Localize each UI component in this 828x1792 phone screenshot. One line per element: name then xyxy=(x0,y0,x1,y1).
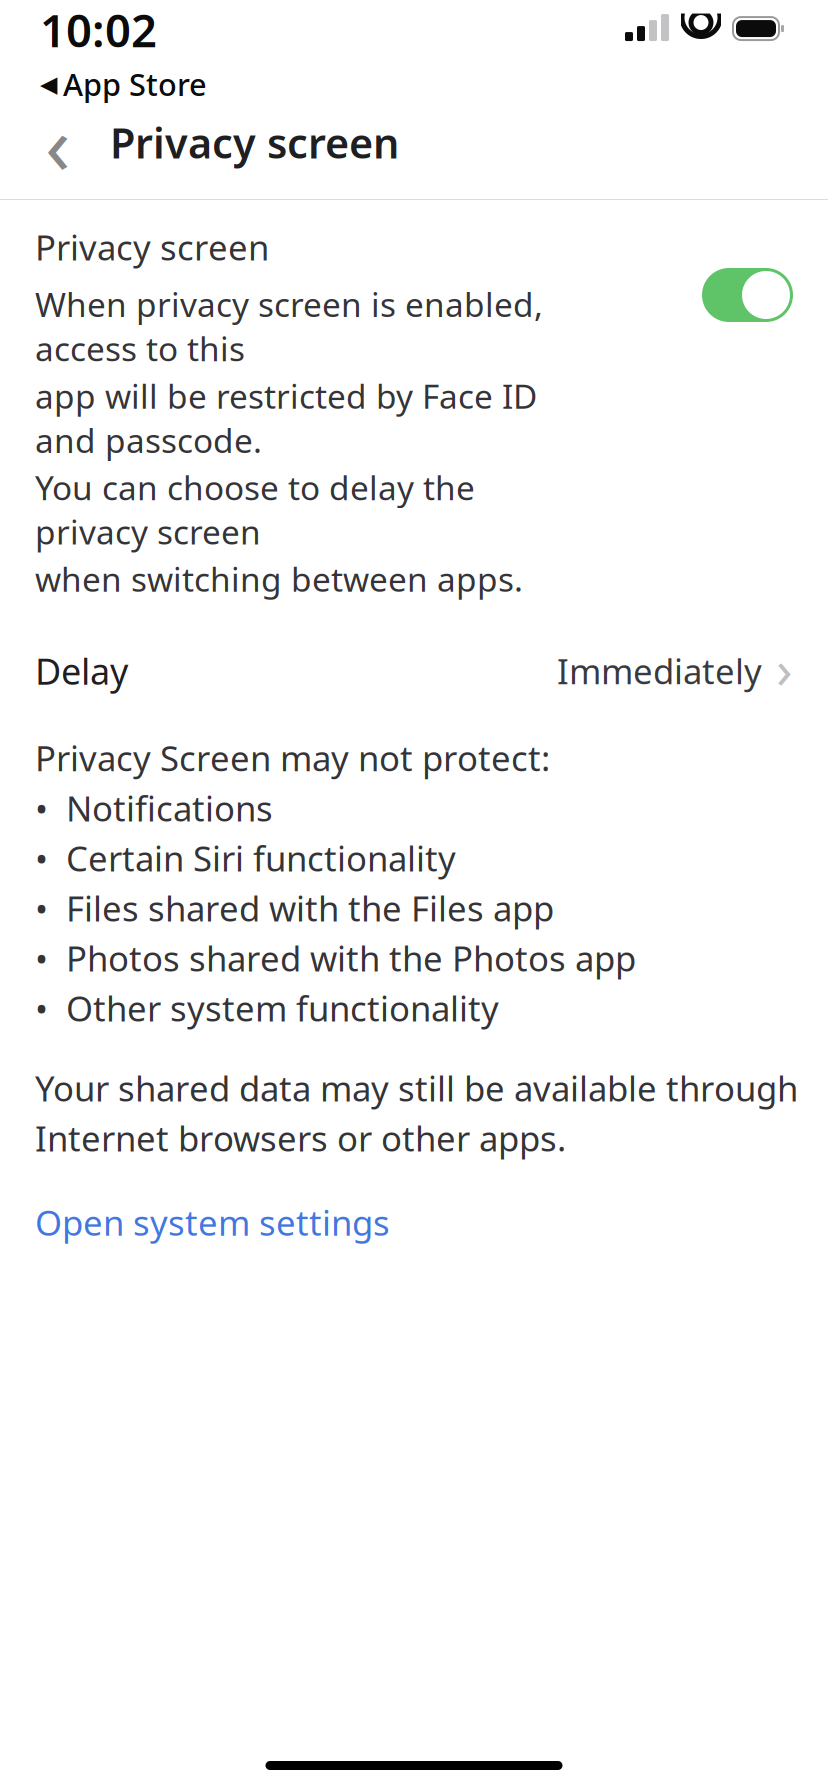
staticText: Delay xyxy=(35,647,128,695)
staticText: • Other system functionality xyxy=(35,985,499,1031)
button[interactable]: Open system settings xyxy=(0,1161,425,1255)
staticText: Privacy Screen may not protect: xyxy=(35,735,550,781)
button[interactable]: Back xyxy=(20,104,96,180)
staticText: app will be restricted by Face ID and pa… xyxy=(35,374,537,462)
staticText: • Certain Siri functionality xyxy=(35,835,456,881)
staticText: Immediately xyxy=(557,648,762,694)
staticText: ◀ xyxy=(40,71,57,97)
staticText: ‹ xyxy=(45,88,71,197)
staticText: • Notifications xyxy=(35,785,273,831)
staticText: Privacy screen xyxy=(110,115,399,170)
staticText: Privacy screen xyxy=(35,224,269,270)
button[interactable]: Privacy screen toggle xyxy=(702,268,793,322)
staticText: › xyxy=(776,632,793,703)
staticText: Your shared data may still be available … xyxy=(35,1065,798,1111)
staticText: App Store xyxy=(63,64,207,104)
staticText: • Files shared with the Files app xyxy=(35,885,554,931)
staticText: • Photos shared with the Photos app xyxy=(35,935,636,981)
staticText: 10:02 xyxy=(40,0,157,60)
staticText: You can choose to delay the privacy scre… xyxy=(35,465,475,554)
staticText: when switching between apps. xyxy=(35,557,523,601)
staticText: Internet browsers or other apps. xyxy=(35,1115,566,1161)
staticText: When privacy screen is enabled, access t… xyxy=(35,282,543,370)
staticText: Open system settings xyxy=(35,1199,390,1245)
button[interactable]: Delay xyxy=(0,635,828,707)
